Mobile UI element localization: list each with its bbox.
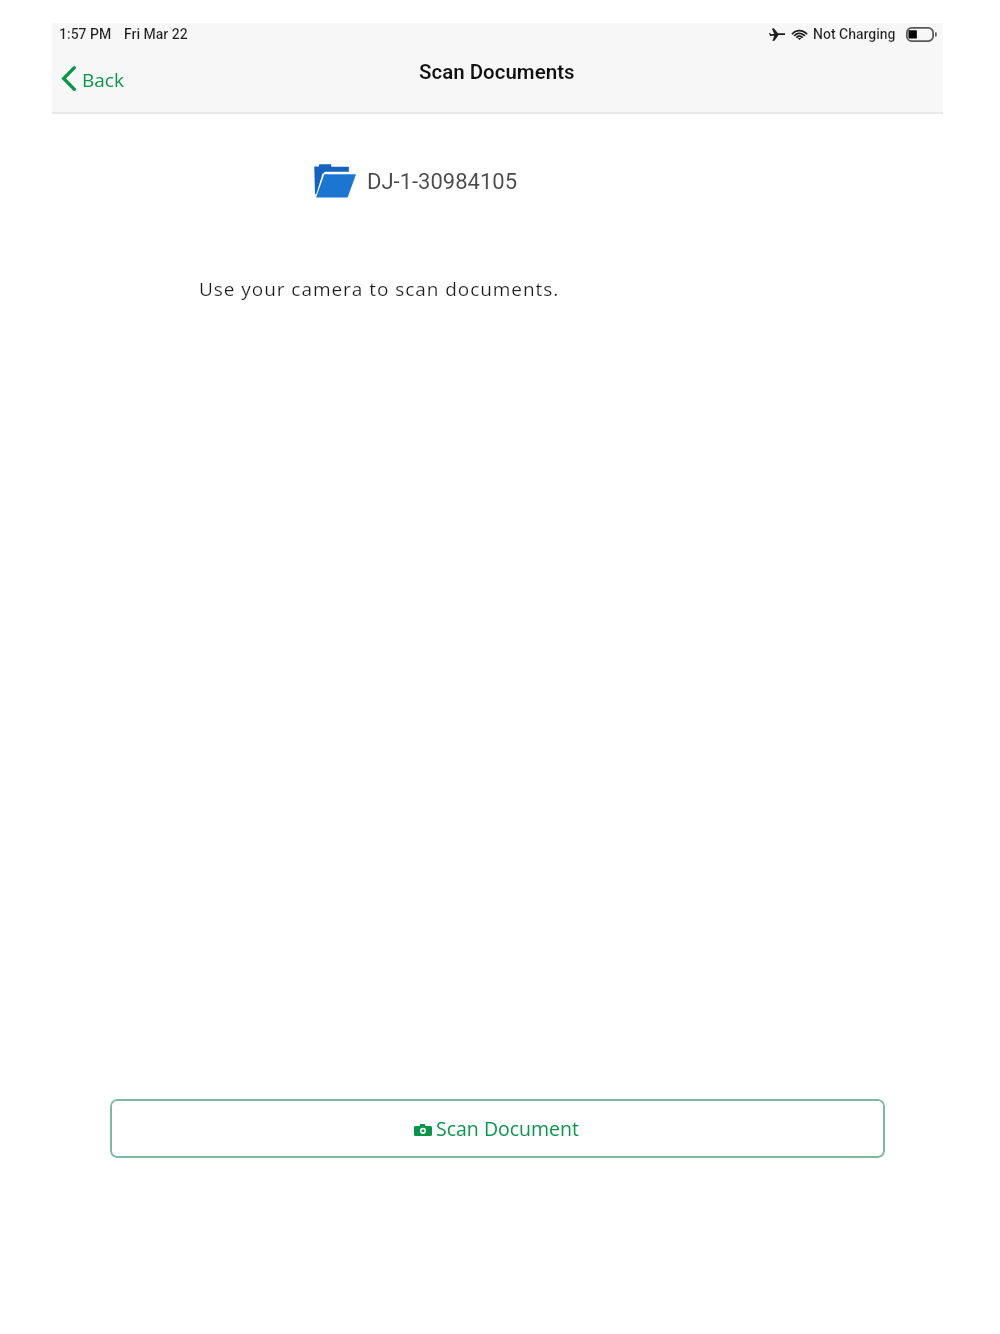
- staticText: Not Charging: [813, 26, 896, 42]
- staticText: Back: [82, 67, 124, 93]
- button[interactable]: Scan Document: [110, 1099, 885, 1158]
- staticText: Scan Documents: [419, 60, 575, 84]
- staticText: DJ-1-30984105: [367, 169, 518, 195]
- staticText: Fri Mar 22: [124, 26, 188, 42]
- button[interactable]: Back: [53, 59, 133, 99]
- staticText: Scan Document: [436, 1115, 579, 1142]
- staticText: 1:57 PM: [59, 26, 112, 42]
- staticText: Use your camera to scan documents.: [199, 276, 560, 302]
